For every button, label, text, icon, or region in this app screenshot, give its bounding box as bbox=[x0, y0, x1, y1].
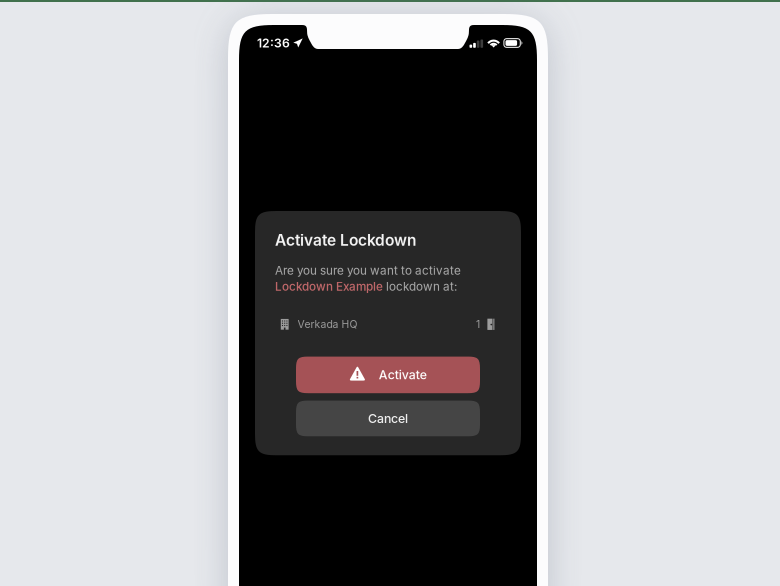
staticText: lockdown at: bbox=[383, 279, 457, 293]
staticText: Are you sure you want to activate bbox=[275, 263, 461, 277]
staticText: Verkada HQ bbox=[298, 318, 358, 331]
staticText: 12:36 bbox=[257, 36, 290, 50]
staticText: 1 bbox=[476, 318, 480, 331]
button[interactable]: Activate bbox=[296, 357, 480, 393]
button[interactable]: Cancel bbox=[296, 401, 480, 436]
staticText: Lockdown Example bbox=[275, 279, 383, 293]
staticText: Activate Lockdown bbox=[275, 231, 416, 249]
staticText: Cancel bbox=[368, 411, 408, 426]
staticText: Activate bbox=[379, 367, 427, 382]
